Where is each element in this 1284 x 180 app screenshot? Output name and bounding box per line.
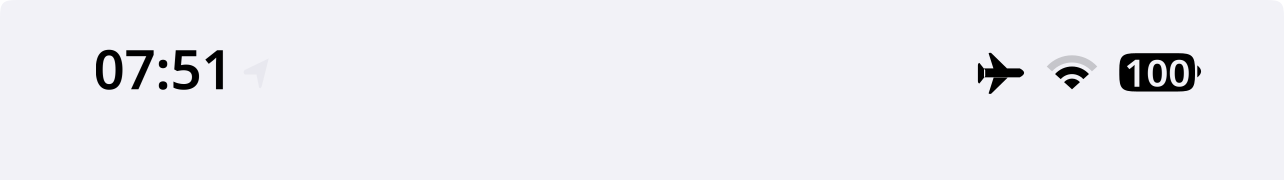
staticText: 100 [1124, 46, 1190, 97]
staticText: 07:51 [93, 32, 232, 104]
